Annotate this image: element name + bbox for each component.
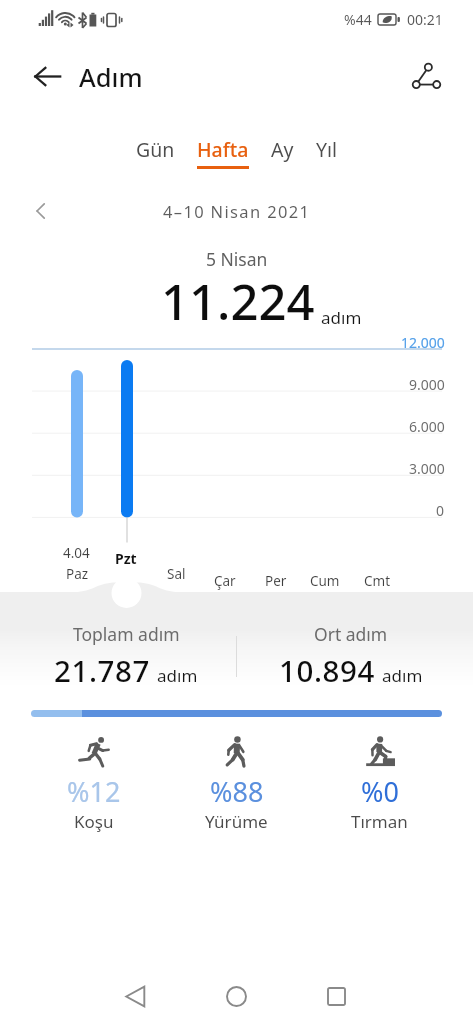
staticText: %0	[361, 773, 399, 810]
staticText: %12	[67, 773, 121, 810]
button[interactable]: Recent apps	[310, 970, 363, 1023]
button[interactable]: %0	[308, 736, 451, 833]
button[interactable]: %88	[165, 736, 308, 833]
staticText: 3.000	[409, 459, 445, 478]
staticText: 10.894	[279, 650, 375, 690]
staticText: Cum	[310, 572, 340, 590]
staticText: Koşu	[74, 810, 114, 833]
button[interactable]: %12	[22, 736, 165, 833]
staticText: 00:21	[407, 10, 443, 29]
button[interactable]: Hafta	[193, 136, 253, 169]
staticText: 9.000	[409, 375, 445, 394]
staticText: 0	[436, 501, 445, 520]
staticText: 11.224	[161, 268, 315, 335]
staticText: Ort adım	[314, 622, 388, 646]
staticText: Adım	[79, 60, 143, 95]
staticText: 5 Nisan	[206, 247, 268, 271]
staticText: Per	[265, 572, 287, 590]
staticText: Hafta	[197, 136, 249, 163]
staticText: adım	[382, 664, 423, 687]
button[interactable]: Back	[28, 57, 66, 95]
staticText: %88	[210, 773, 264, 810]
button[interactable]	[31, 710, 442, 717]
staticText: 21.787	[54, 650, 150, 690]
staticText: adım	[157, 664, 198, 687]
staticText: Tırman	[351, 810, 408, 833]
staticText: Paz	[66, 565, 89, 583]
staticText: Yürüme	[205, 810, 268, 833]
staticText: Cmt	[364, 572, 391, 590]
staticText: Toplam adım	[73, 622, 180, 646]
staticText: Sal	[167, 565, 186, 583]
staticText: Pzt	[115, 549, 137, 568]
staticText: Yıl	[316, 136, 338, 163]
staticText: 6.000	[409, 417, 445, 436]
button[interactable]: Previous week	[27, 197, 55, 225]
button[interactable]: Share	[405, 55, 447, 97]
staticText: 4–10 Nisan 2021	[163, 200, 311, 222]
staticText: Gün	[136, 136, 175, 163]
button[interactable]: Gün	[132, 136, 179, 166]
button[interactable]: Home	[210, 970, 263, 1023]
button[interactable]: Ay	[267, 136, 298, 166]
staticText: %44	[344, 10, 372, 29]
staticText: Ay	[271, 136, 294, 163]
staticText: adım	[321, 306, 362, 329]
staticText: 4.04	[63, 544, 90, 562]
staticText: Çar	[214, 572, 236, 590]
staticText: 12.000	[401, 333, 445, 352]
button[interactable]: Back	[109, 970, 162, 1023]
button[interactable]: Yıl	[312, 136, 342, 166]
